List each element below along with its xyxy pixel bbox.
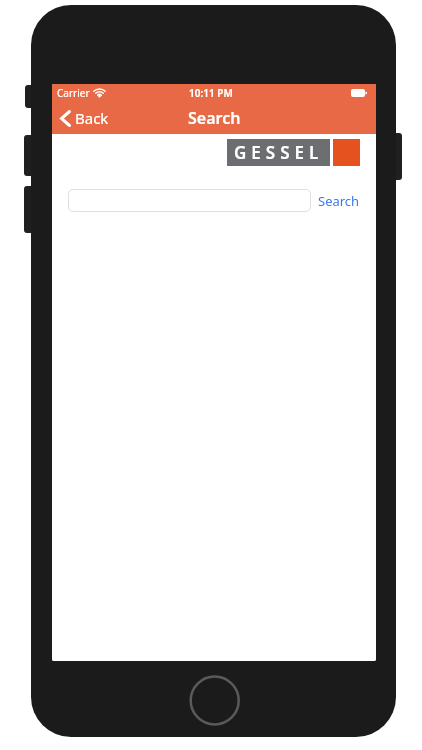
- staticText: Search: [318, 192, 360, 210]
- staticText: Search: [188, 107, 241, 129]
- button[interactable]: Search: [311, 192, 367, 210]
- button[interactable]: [68, 189, 311, 212]
- staticText: Carrier: [57, 86, 90, 100]
- staticText: GESSEL: [234, 141, 324, 164]
- staticText: 10:11 PM: [189, 86, 233, 100]
- button[interactable]: Back: [58, 106, 111, 130]
- staticText: Back: [75, 108, 109, 128]
